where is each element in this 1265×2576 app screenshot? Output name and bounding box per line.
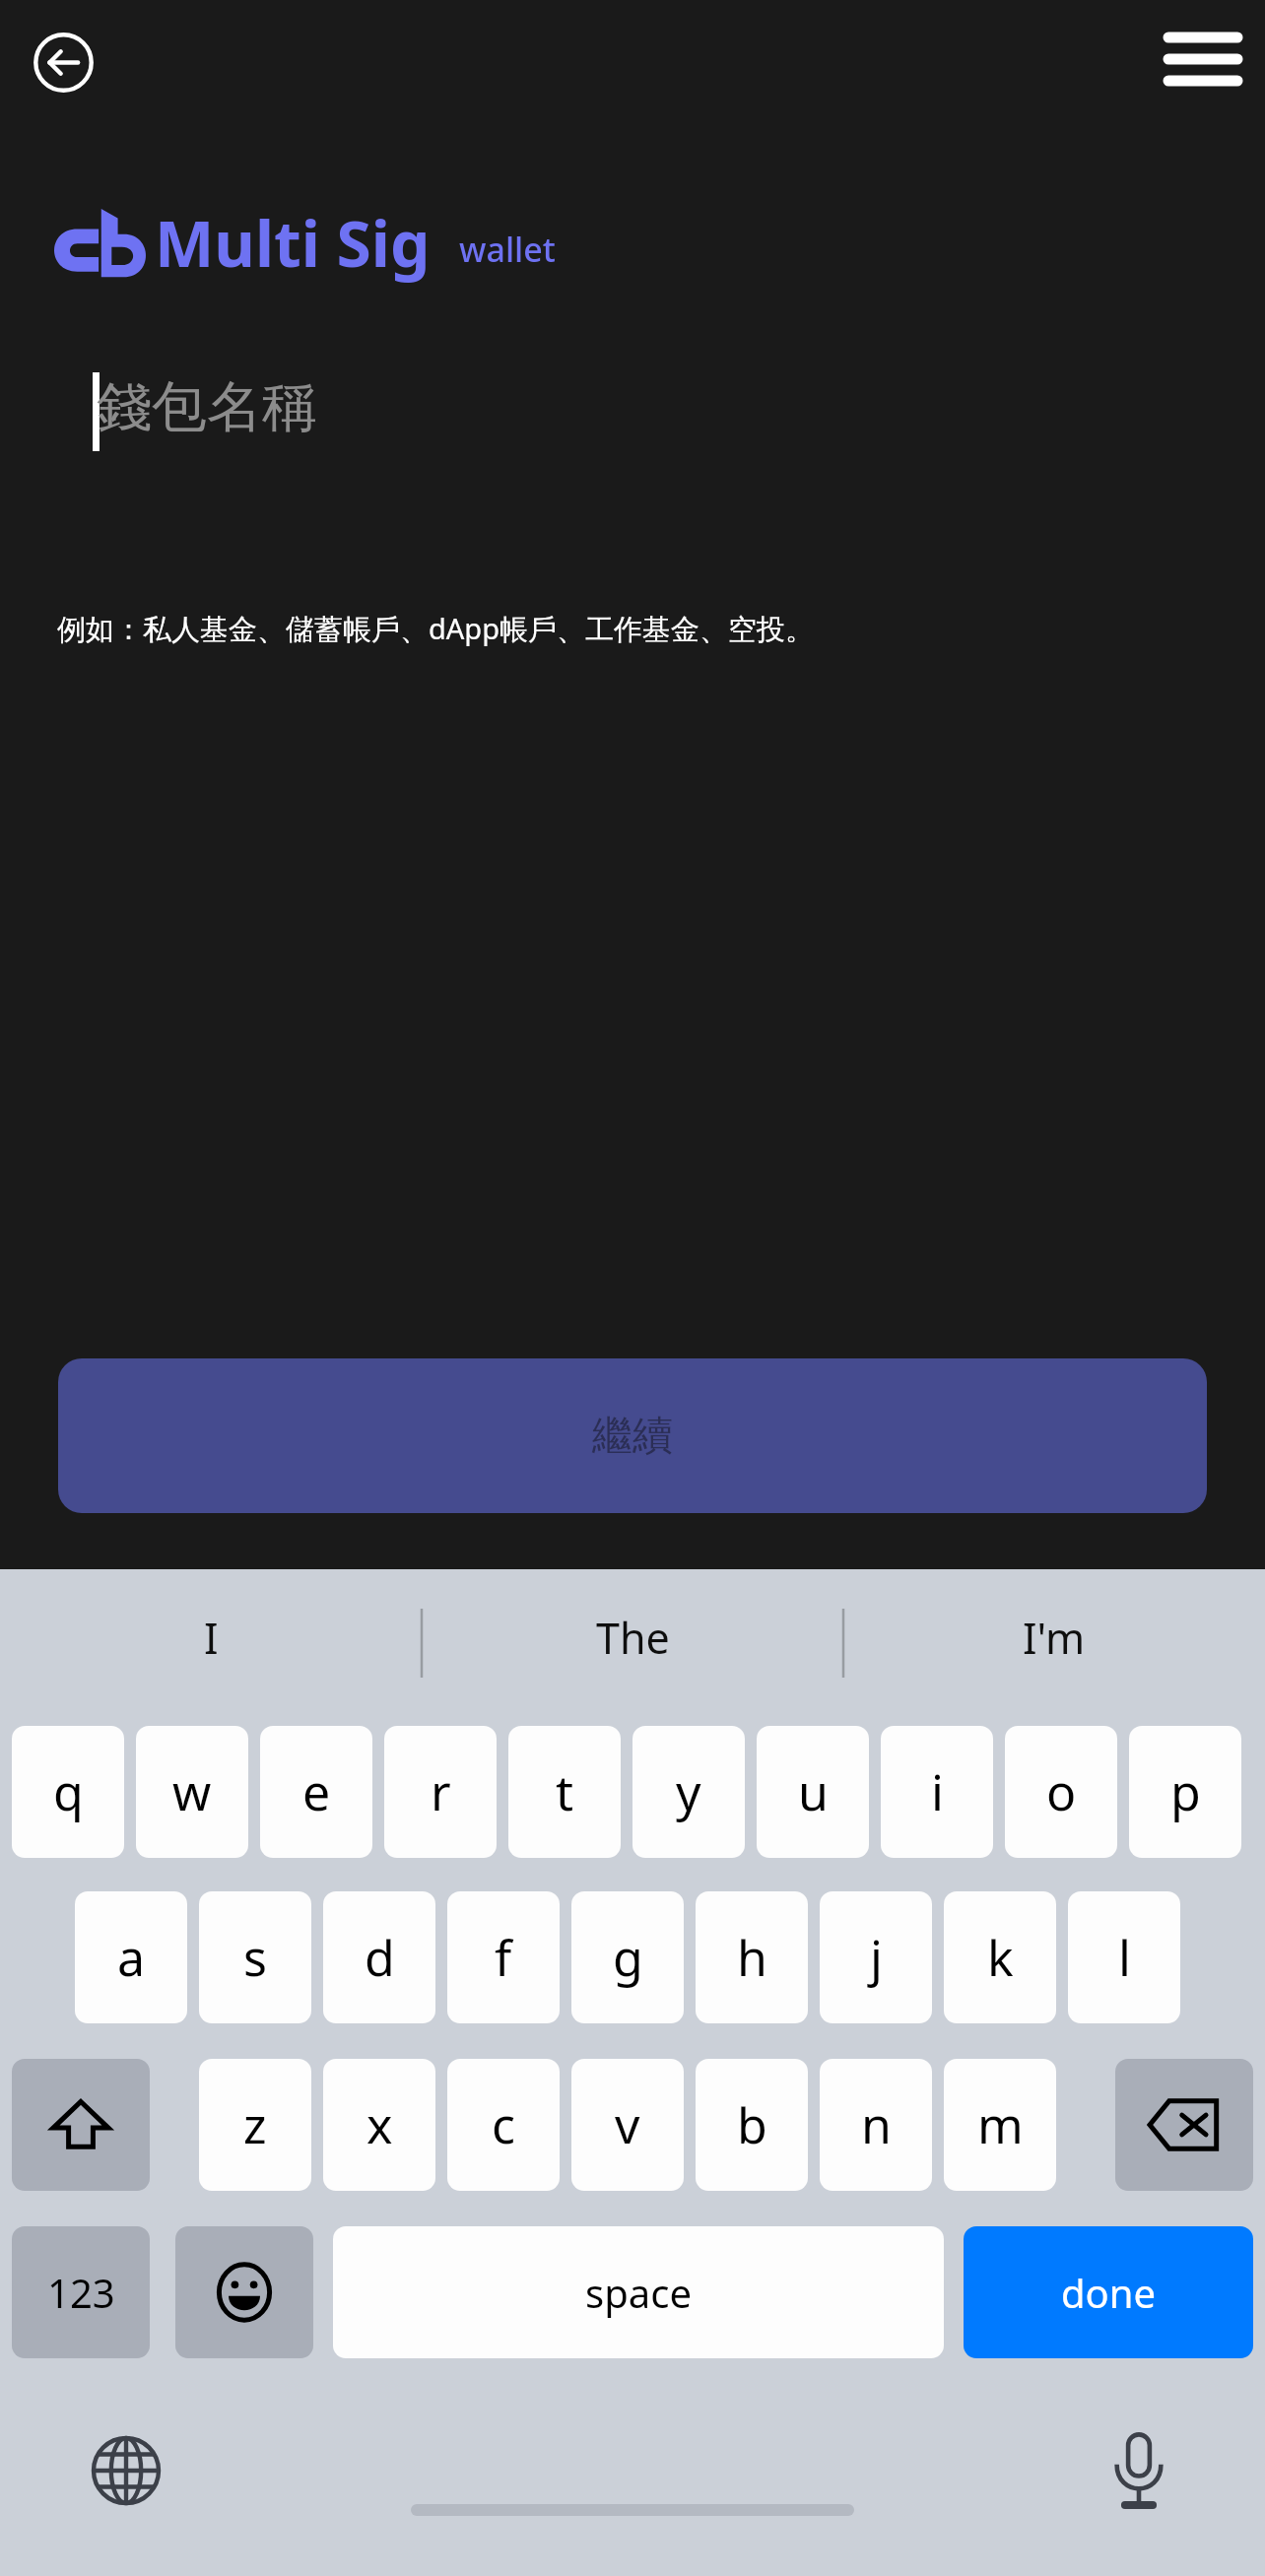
button[interactable]: c: [447, 2059, 560, 2191]
button[interactable]: j: [820, 1891, 932, 2023]
button[interactable]: Change keyboard language: [77, 2421, 175, 2520]
button[interactable]: Voice input: [1090, 2421, 1188, 2520]
staticText: wallet: [459, 227, 556, 272]
staticText: n: [861, 2091, 892, 2158]
staticText: x: [366, 2091, 393, 2158]
staticText: space: [585, 2266, 692, 2319]
staticText: 錢包名稱: [97, 372, 317, 442]
staticText: w: [172, 1758, 212, 1825]
button[interactable]: Menu: [1155, 14, 1253, 108]
button[interactable]: b: [696, 2059, 808, 2191]
button[interactable]: Backspace: [1115, 2059, 1253, 2191]
button[interactable]: z: [199, 2059, 311, 2191]
button[interactable]: done: [964, 2226, 1253, 2358]
staticText: m: [977, 2091, 1024, 2158]
button[interactable]: y: [632, 1726, 745, 1858]
staticText: l: [1118, 1924, 1131, 1991]
button[interactable]: Back: [33, 33, 94, 93]
staticText: c: [492, 2091, 515, 2158]
staticText: Multi Sig: [155, 200, 431, 286]
staticText: r: [431, 1758, 451, 1825]
staticText: g: [613, 1924, 643, 1991]
button[interactable]: 123: [12, 2226, 150, 2358]
button[interactable]: w: [136, 1726, 248, 1858]
staticText: done: [1061, 2266, 1157, 2319]
staticText: y: [676, 1758, 701, 1825]
button[interactable]: Emoji: [175, 2226, 313, 2358]
staticText: v: [615, 2091, 640, 2158]
button[interactable]: x: [323, 2059, 435, 2191]
button[interactable]: space: [333, 2226, 944, 2358]
staticText: q: [53, 1758, 84, 1825]
staticText: i: [931, 1758, 944, 1825]
staticText: z: [243, 2091, 267, 2158]
staticText: p: [1170, 1758, 1201, 1825]
button[interactable]: g: [571, 1891, 684, 2023]
button[interactable]: u: [757, 1726, 869, 1858]
button[interactable]: a: [75, 1891, 187, 2023]
button[interactable]: e: [260, 1726, 372, 1858]
button[interactable]: p: [1129, 1726, 1241, 1858]
staticText: 例如：私人基金、儲蓄帳戶、dApp帳戶、工作基金、空投。: [57, 609, 815, 648]
staticText: t: [556, 1758, 574, 1825]
staticText: I'm: [1023, 1609, 1086, 1667]
button[interactable]: 錢包名稱: [59, 345, 1206, 483]
button[interactable]: k: [944, 1891, 1056, 2023]
staticText: I: [204, 1609, 219, 1667]
button[interactable]: f: [447, 1891, 560, 2023]
staticText: j: [870, 1924, 883, 1991]
staticText: a: [117, 1924, 146, 1991]
button[interactable]: v: [571, 2059, 684, 2191]
button[interactable]: r: [384, 1726, 497, 1858]
button[interactable]: m: [944, 2059, 1056, 2191]
staticText: d: [365, 1924, 395, 1991]
button[interactable]: n: [820, 2059, 932, 2191]
button[interactable]: i: [881, 1726, 993, 1858]
button[interactable]: h: [696, 1891, 808, 2023]
staticText: s: [243, 1924, 267, 1991]
button[interactable]: t: [508, 1726, 621, 1858]
button[interactable]: s: [199, 1891, 311, 2023]
button[interactable]: d: [323, 1891, 435, 2023]
staticText: h: [737, 1924, 767, 1991]
button[interactable]: o: [1005, 1726, 1117, 1858]
staticText: The: [596, 1609, 670, 1667]
button[interactable]: Shift: [12, 2059, 150, 2191]
button[interactable]: I'm: [843, 1569, 1265, 1705]
staticText: f: [495, 1924, 512, 1991]
staticText: 繼續: [592, 1411, 673, 1462]
button[interactable]: q: [12, 1726, 124, 1858]
staticText: b: [737, 2091, 767, 2158]
staticText: o: [1046, 1758, 1077, 1825]
staticText: u: [798, 1758, 829, 1825]
staticText: e: [302, 1758, 331, 1825]
staticText: 123: [47, 2266, 115, 2319]
button[interactable]: 繼續: [58, 1358, 1207, 1513]
staticText: k: [987, 1924, 1014, 1991]
button[interactable]: I: [0, 1569, 422, 1705]
button[interactable]: l: [1068, 1891, 1180, 2023]
button[interactable]: The: [422, 1569, 843, 1705]
